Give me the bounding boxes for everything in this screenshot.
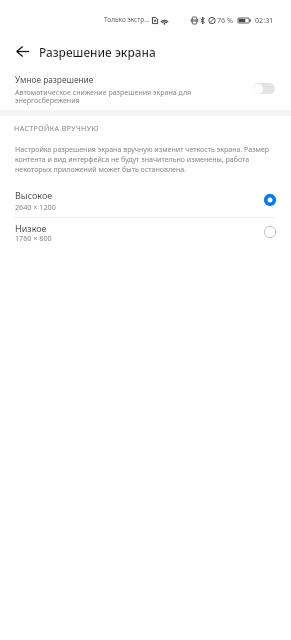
button[interactable]: Назад: [7, 36, 37, 66]
button[interactable]: Умное разрешение: [0, 69, 291, 109]
staticText: Разрешение экрана: [39, 44, 156, 60]
staticText: Автоматическое снижение разрешения экран…: [15, 87, 230, 105]
staticText: 76 %: [217, 15, 234, 25]
button[interactable]: Низкое: [0, 217, 291, 249]
staticText: 2640 × 1200: [15, 202, 56, 212]
staticText: Только экстр...: [104, 15, 150, 24]
staticText: НАСТРОЙКА ВРУЧНУЮ: [14, 123, 99, 133]
button[interactable]: Умное разрешение: [253, 83, 275, 94]
button[interactable]: Высокое: [0, 183, 291, 216]
staticText: Настройка разрешения экрана вручную изме…: [15, 144, 280, 174]
staticText: 02:31: [255, 15, 274, 25]
staticText: Умное разрешение: [15, 74, 94, 85]
staticText: Низкое: [15, 222, 47, 234]
staticText: 1760 × 800: [15, 233, 52, 243]
staticText: Высокое: [15, 189, 53, 201]
